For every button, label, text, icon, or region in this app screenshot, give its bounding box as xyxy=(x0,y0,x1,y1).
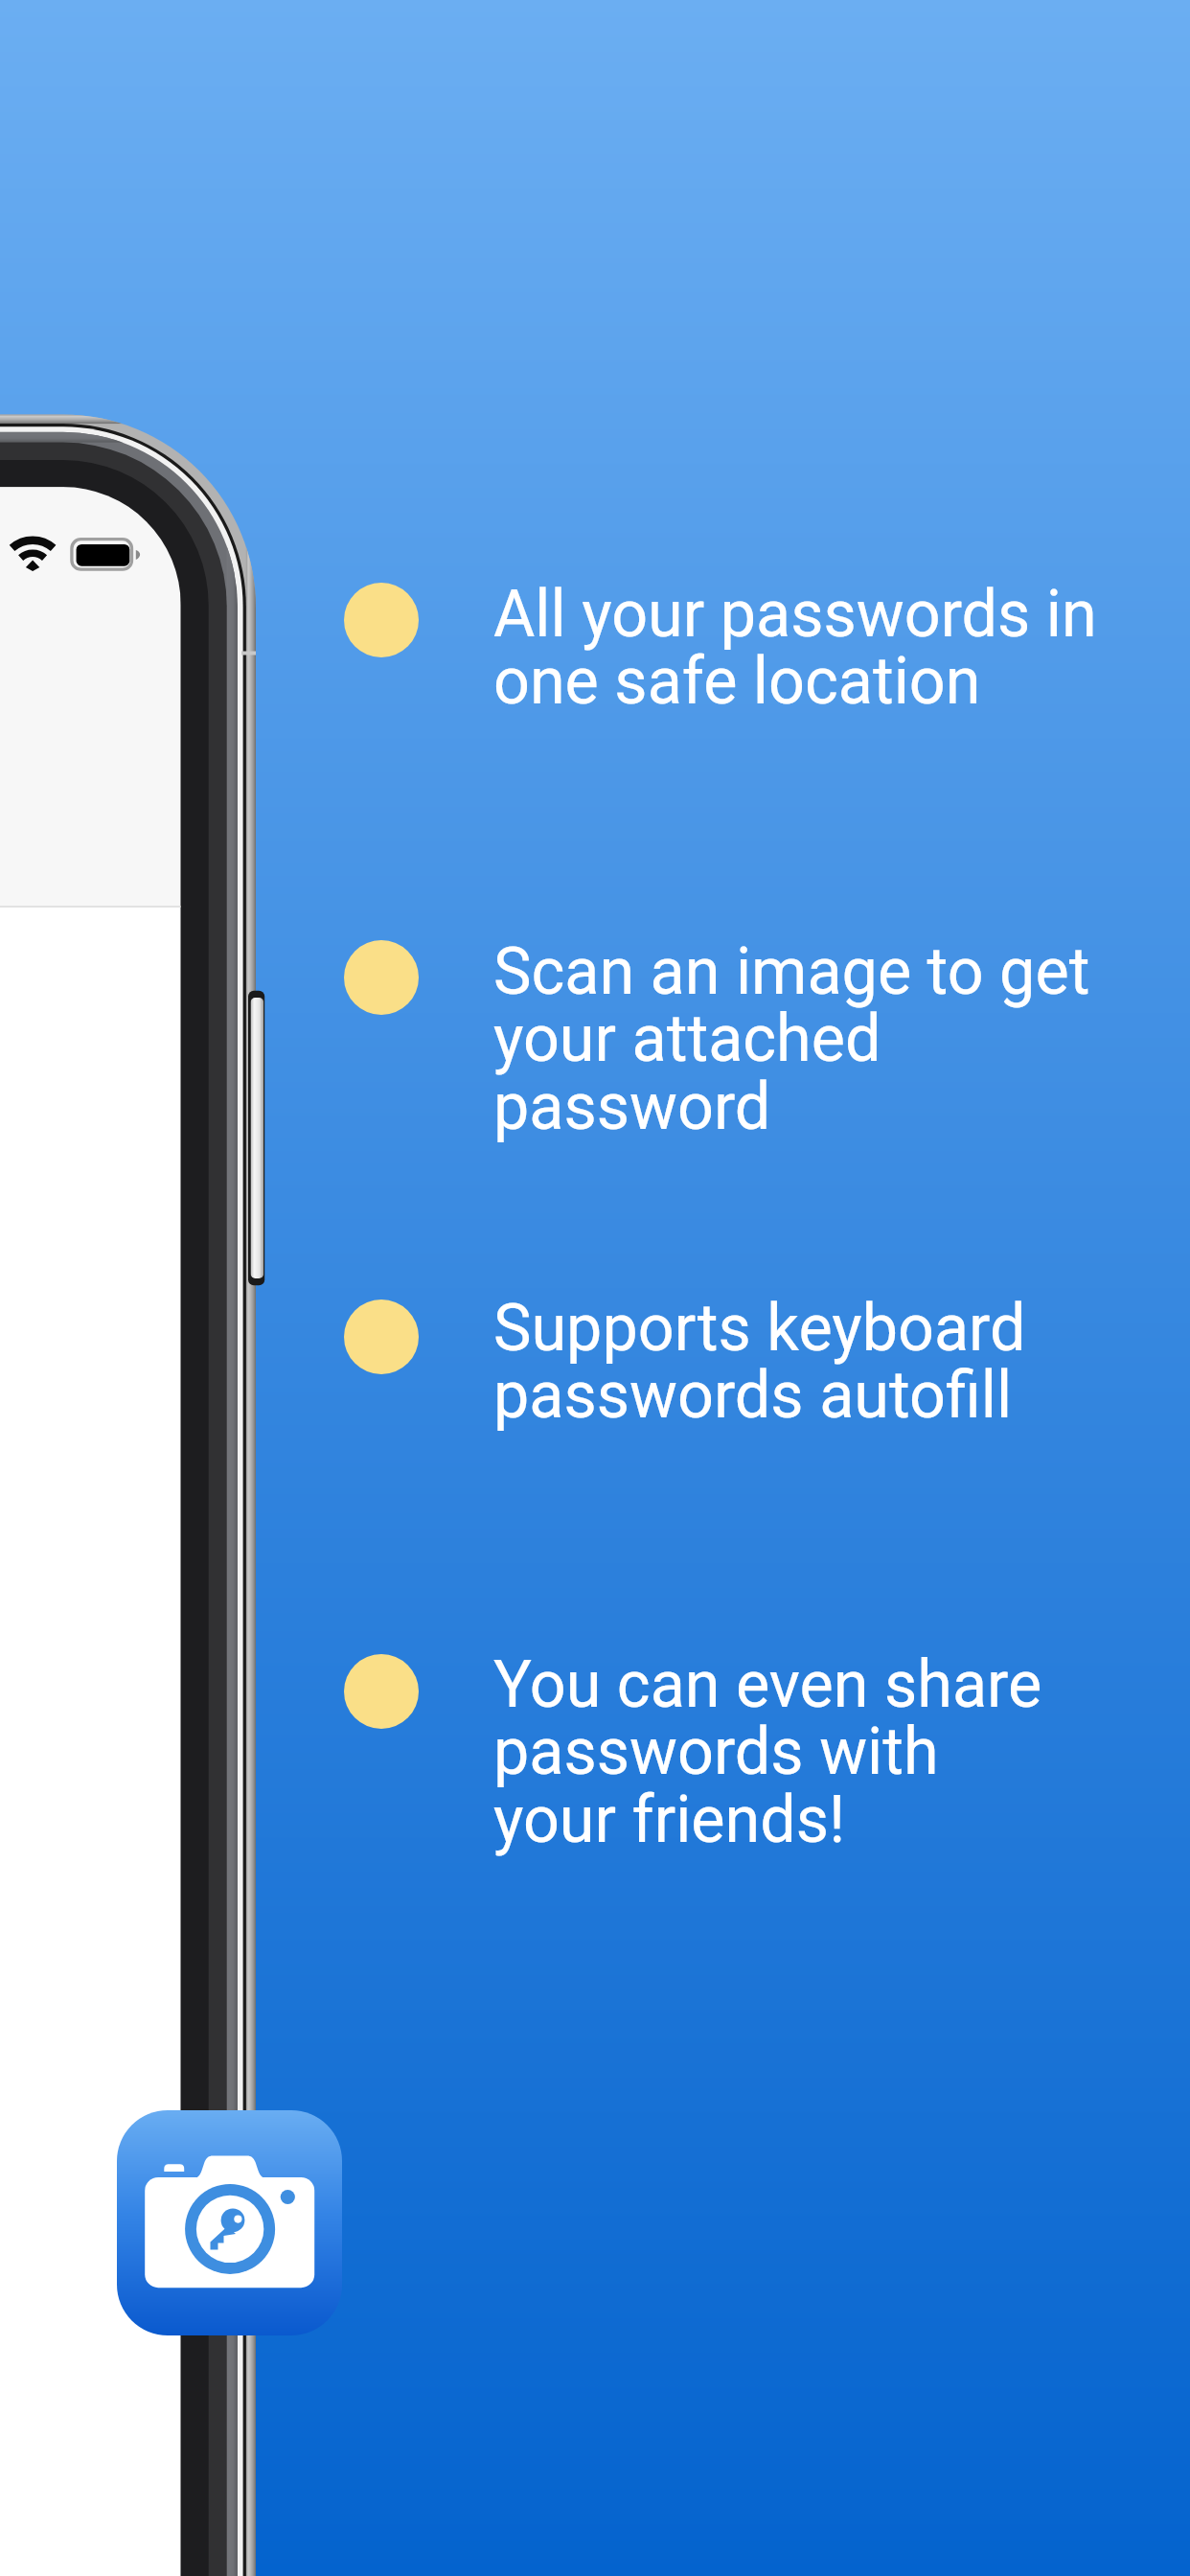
button[interactable] xyxy=(344,1648,1034,1865)
button[interactable] xyxy=(344,1294,1034,1443)
staticText: Supports keyboard passwords autofill xyxy=(493,1289,1190,1432)
button[interactable] xyxy=(344,934,1034,1151)
button[interactable]: Password camera app icon xyxy=(117,2110,342,2335)
staticText: All your passwords in one safe location xyxy=(493,575,1190,718)
staticText: Scan an image to get your attached passw… xyxy=(493,932,1190,1143)
button[interactable] xyxy=(344,577,1034,726)
staticText: You can even share passwords with your f… xyxy=(493,1645,1190,1856)
